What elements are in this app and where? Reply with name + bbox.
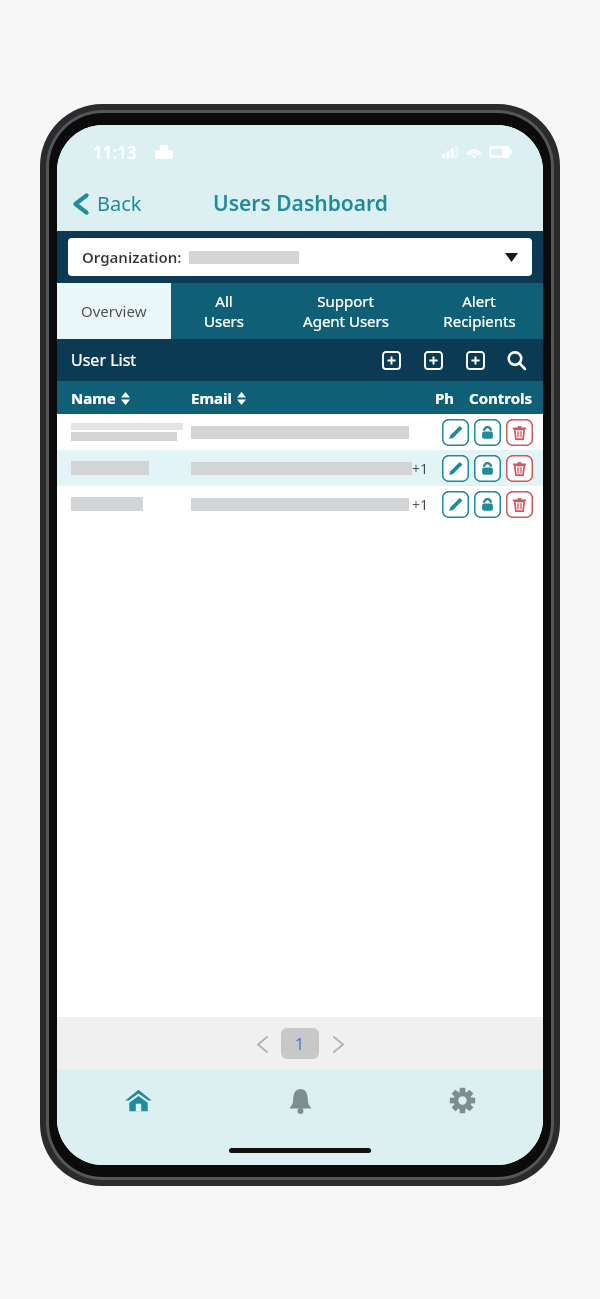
button[interactable]: +1 (57, 450, 543, 486)
button[interactable]: Settings (381, 1069, 543, 1131)
button[interactable]: Delete (506, 419, 533, 446)
staticText: +1 (412, 459, 429, 478)
staticText: Ph (435, 388, 455, 408)
button[interactable]: Email (191, 388, 435, 408)
button[interactable]: Search (503, 347, 529, 373)
button[interactable]: Notifications (219, 1069, 381, 1131)
staticText: Organization: (82, 247, 182, 267)
button[interactable]: Edit (442, 455, 469, 482)
button[interactable]: Add (421, 348, 445, 372)
button[interactable]: Overview (57, 283, 171, 339)
staticText: Overview (81, 301, 147, 321)
staticText: Alert (462, 291, 496, 311)
staticText: 1 (295, 1033, 305, 1055)
staticText: Back (97, 190, 142, 217)
button[interactable]: Lock (474, 455, 501, 482)
staticText: User List (71, 349, 137, 371)
staticText: Agent Users (303, 311, 389, 331)
button[interactable]: Add (379, 348, 403, 372)
button[interactable]: 1 (281, 1028, 319, 1059)
button[interactable]: Support (276, 283, 415, 339)
button[interactable]: Name (71, 388, 191, 408)
button[interactable]: Previous page (249, 1031, 275, 1057)
button[interactable]: Home (57, 1069, 219, 1131)
button[interactable]: +1 (57, 486, 543, 522)
staticText: Email (191, 388, 232, 408)
button[interactable]: Lock (474, 419, 501, 446)
button[interactable]: Edit (442, 491, 469, 518)
staticText: +1 (412, 495, 429, 514)
button[interactable]: Edit (57, 414, 543, 450)
staticText: Users (204, 311, 244, 331)
button[interactable]: Alert (415, 283, 543, 339)
button[interactable]: Delete (506, 455, 533, 482)
staticText: 11:13 (93, 141, 137, 164)
button[interactable]: Edit (442, 419, 469, 446)
staticText: Support (317, 291, 374, 311)
button[interactable]: Next page (325, 1031, 351, 1057)
button[interactable]: Add (463, 348, 487, 372)
staticText: Name (71, 388, 116, 408)
button[interactable]: Lock (474, 491, 501, 518)
staticText: Controls (469, 388, 533, 408)
button[interactable]: Delete (506, 491, 533, 518)
button[interactable]: Back (57, 186, 152, 221)
staticText: Users Dashboard (213, 189, 388, 218)
button[interactable]: All (171, 283, 276, 339)
button[interactable]: Organization: (68, 238, 532, 276)
staticText: All (215, 291, 233, 311)
staticText: Recipients (443, 311, 516, 331)
